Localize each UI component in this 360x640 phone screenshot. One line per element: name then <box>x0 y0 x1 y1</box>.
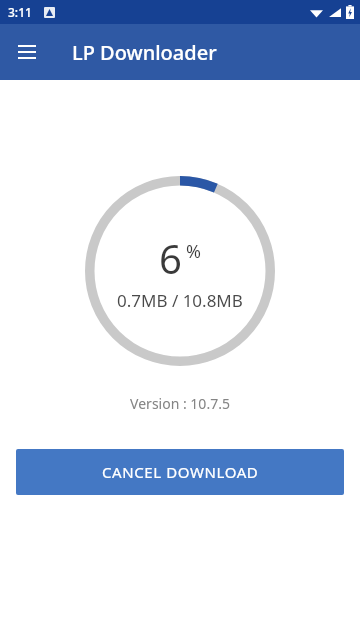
staticText: 3:11 <box>8 4 32 20</box>
button[interactable]: Open navigation menu <box>3 28 51 76</box>
staticText: 0.7MB / 10.8MB <box>117 289 243 312</box>
staticText: LP Downloader <box>72 39 217 66</box>
button[interactable]: CANCEL DOWNLOAD <box>16 449 344 495</box>
staticText: % <box>186 239 201 264</box>
staticText: CANCEL DOWNLOAD <box>102 462 259 482</box>
staticText: Version : 10.7.5 <box>0 394 360 413</box>
staticText: 6 <box>159 231 182 285</box>
